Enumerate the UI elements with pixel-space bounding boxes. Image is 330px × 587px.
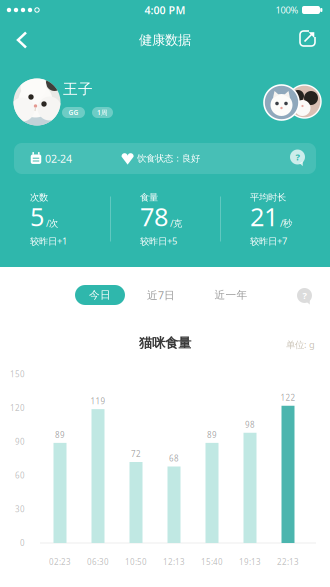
staticText: 单位: g	[286, 338, 315, 351]
button[interactable]: Switch pet	[263, 83, 321, 121]
staticText: 较昨日+5	[140, 235, 177, 247]
staticText: ?	[302, 289, 306, 302]
staticText: 今日	[89, 288, 111, 301]
staticText: 72	[131, 449, 141, 459]
button[interactable]: 近7日	[136, 285, 186, 305]
staticText: 食量	[140, 192, 158, 203]
staticText: 健康数据	[139, 32, 191, 48]
staticText: 较昨日+7	[250, 235, 287, 247]
staticText: /次	[46, 217, 58, 229]
staticText: 90	[15, 436, 25, 447]
staticText: 119	[90, 396, 105, 406]
staticText: 68	[169, 453, 179, 464]
staticText: 120	[10, 403, 25, 413]
button[interactable]: Help	[290, 149, 306, 166]
staticText: 22:13	[277, 557, 299, 567]
button[interactable]: Share	[294, 25, 322, 53]
staticText: 02:23	[49, 557, 71, 567]
staticText: 近7日	[147, 288, 175, 302]
button[interactable]: 02-24	[14, 143, 316, 174]
staticText: 4:00 PM	[144, 3, 185, 17]
button[interactable]: 今日	[75, 285, 125, 305]
staticText: 12:13	[163, 557, 185, 567]
staticText: 21	[250, 200, 278, 233]
staticText: 次数	[30, 192, 48, 203]
staticText: 122	[280, 392, 295, 403]
staticText: 王子	[63, 80, 93, 98]
staticText: 近一年	[214, 288, 247, 301]
staticText: /秒	[280, 217, 292, 229]
staticText: ?	[295, 151, 299, 163]
staticText: 饮食状态：良好	[137, 153, 200, 164]
button[interactable]: Chart help	[297, 288, 313, 305]
button[interactable]: 近一年	[204, 285, 258, 305]
staticText: 5	[30, 200, 44, 233]
staticText: 10:50	[125, 557, 147, 567]
staticText: 较昨日+1	[30, 235, 67, 247]
staticText: 98	[245, 419, 255, 430]
staticText: GG	[68, 108, 78, 117]
staticText: 100%	[275, 4, 298, 16]
staticText: 15:40	[201, 557, 223, 567]
staticText: 06:30	[87, 557, 109, 567]
staticText: /克	[170, 217, 182, 229]
staticText: 0	[20, 538, 25, 548]
staticText: 平均时长	[250, 192, 286, 203]
staticText: 19:13	[239, 557, 261, 567]
staticText: 78	[140, 200, 168, 233]
staticText: 1周	[97, 108, 108, 117]
staticText: 60	[15, 470, 25, 481]
staticText: 猫咪食量	[139, 335, 191, 351]
staticText: 30	[15, 504, 25, 514]
staticText: 150	[10, 369, 25, 379]
staticText: 02-24	[45, 151, 72, 166]
staticText: 89	[55, 430, 65, 440]
button[interactable]: Back	[8, 25, 36, 55]
staticText: 89	[207, 430, 217, 440]
